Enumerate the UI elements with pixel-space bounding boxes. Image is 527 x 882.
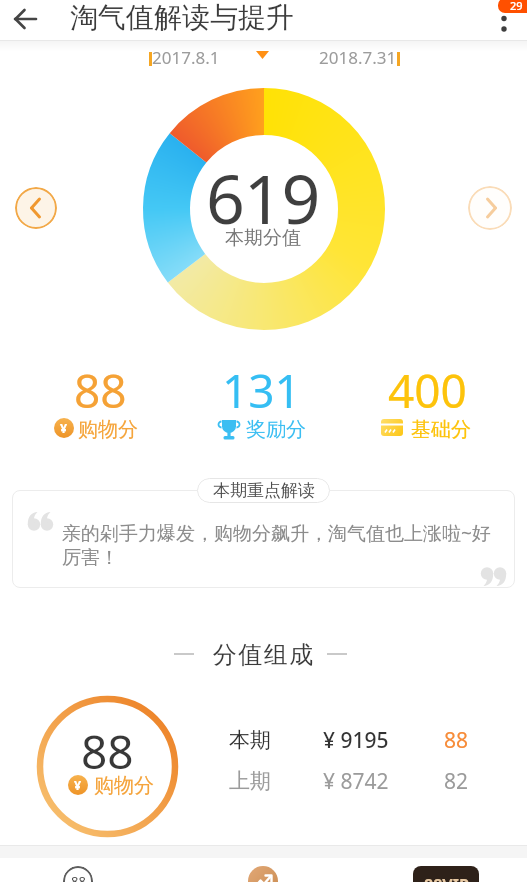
staticText: 88 <box>444 726 469 755</box>
staticText: 上期 <box>229 768 271 794</box>
staticText: 88 <box>74 359 127 422</box>
staticText: 购物分 <box>94 773 154 798</box>
staticText: 本期 <box>229 727 271 753</box>
staticText: 厉害！ <box>62 546 119 570</box>
staticText: 奖励分 <box>246 417 306 442</box>
staticText: 购物分 <box>78 417 138 442</box>
staticText: 400 <box>388 359 467 422</box>
staticText: 基础分 <box>411 417 471 442</box>
staticText: 亲的剁手力爆发，购物分飙升，淘气值也上涨啦~好 <box>62 520 491 546</box>
staticText: 131 <box>222 359 301 422</box>
staticText: ¥ <box>60 420 68 437</box>
staticText: 88 <box>71 872 86 882</box>
staticText: 本期重点解读 <box>213 480 315 501</box>
staticText: 分值组成 <box>212 640 314 670</box>
staticText: ¥ <box>74 777 82 794</box>
staticText: 88 <box>81 720 134 783</box>
staticText: 619 <box>206 151 320 241</box>
staticText: 淘气值解读与提升 <box>70 0 294 35</box>
staticText: 29 <box>510 0 523 13</box>
staticText: 82 <box>444 767 469 796</box>
staticText: ¥ 9195 <box>323 726 389 755</box>
staticText: 2017.8.1 <box>152 46 220 69</box>
staticText: 88VIP <box>424 874 469 882</box>
staticText: ¥ 8742 <box>323 767 389 796</box>
staticText: 2018.7.31 <box>319 46 397 69</box>
staticText: 本期分值 <box>225 226 301 250</box>
